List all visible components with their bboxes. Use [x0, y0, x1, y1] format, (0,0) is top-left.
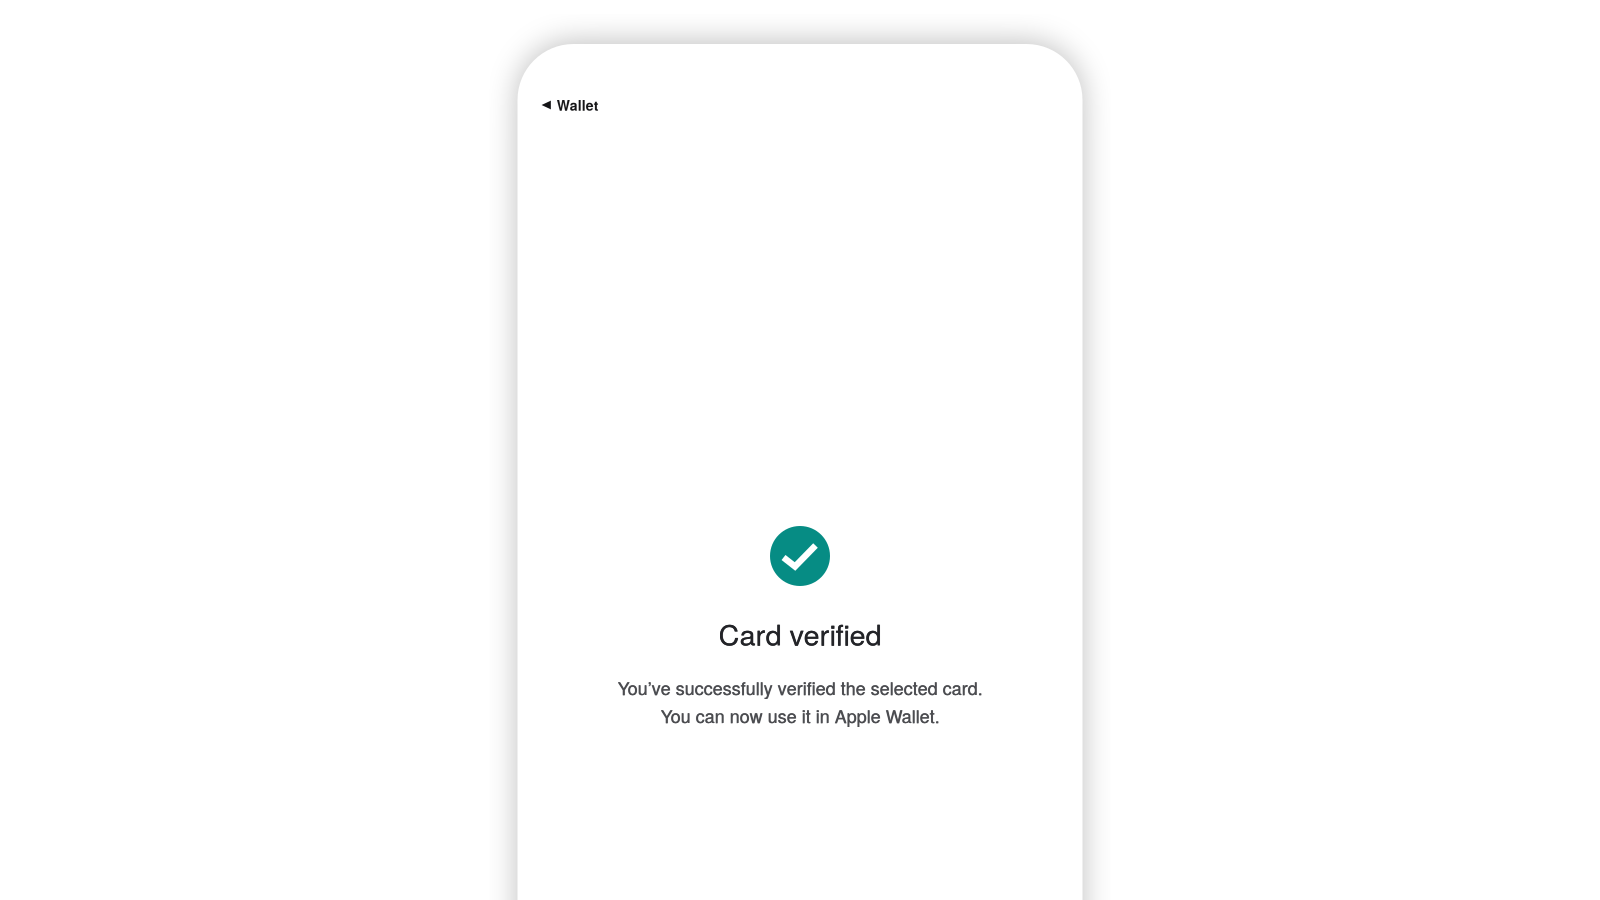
staticText: You’ve successfully verified the selecte…	[617, 675, 982, 700]
button[interactable]: Wallet	[536, 89, 604, 121]
staticText: Wallet	[557, 95, 599, 115]
staticText: You can now use it in Apple Wallet.	[660, 703, 939, 728]
staticText: Card verified	[718, 613, 881, 654]
